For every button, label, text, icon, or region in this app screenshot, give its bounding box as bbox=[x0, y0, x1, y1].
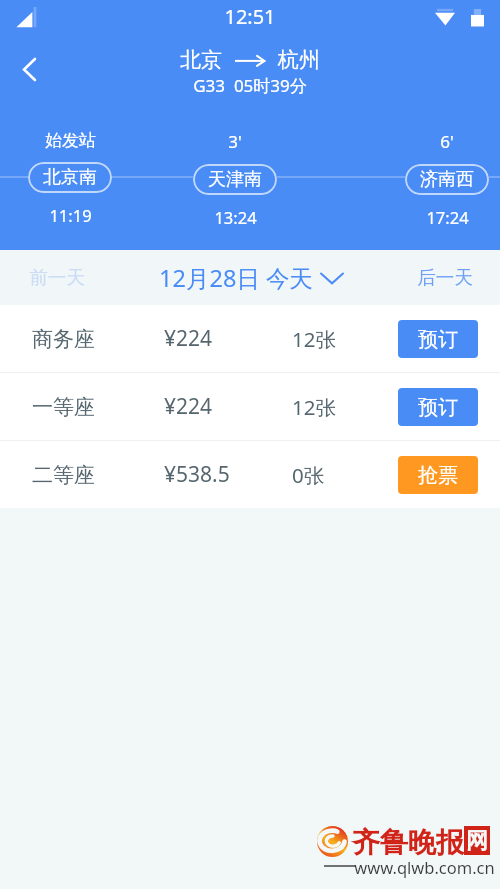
staticText: 前一天 bbox=[29, 266, 85, 289]
staticText: 17:24 bbox=[426, 206, 469, 228]
staticText: 网 bbox=[466, 827, 488, 855]
button[interactable]: Back bbox=[6, 46, 52, 92]
staticText: 始发站 bbox=[45, 130, 96, 151]
staticText: 商务座 bbox=[32, 326, 95, 352]
staticText: 12月28日 今天 bbox=[159, 262, 313, 294]
staticText: www.qlwb.com.cn bbox=[354, 856, 495, 878]
button[interactable]: 济南西 bbox=[405, 164, 489, 195]
button[interactable]: 北京南 bbox=[28, 162, 112, 193]
staticText: 12张 bbox=[292, 393, 336, 421]
staticText: 3' bbox=[228, 130, 242, 153]
button[interactable]: 前一天 bbox=[0, 250, 114, 305]
button[interactable]: 12月28日 今天 bbox=[159, 250, 343, 305]
staticText: 北京南 bbox=[43, 166, 97, 189]
staticText: 12:51 bbox=[0, 3, 500, 30]
staticText: 预订 bbox=[418, 327, 458, 352]
staticText: 一等座 bbox=[32, 394, 95, 420]
staticText: 济南西 bbox=[420, 168, 474, 191]
staticText: ¥538.5 bbox=[164, 460, 230, 489]
staticText: 12张 bbox=[292, 325, 336, 353]
button[interactable]: 预订 bbox=[398, 320, 478, 358]
staticText: ¥224 bbox=[164, 324, 213, 353]
staticText: 齐鲁晚报 bbox=[352, 825, 464, 860]
staticText: 6' bbox=[440, 130, 454, 153]
button[interactable]: 天津南 bbox=[193, 164, 277, 195]
staticText: G33 05时39分 bbox=[0, 74, 500, 97]
staticText: 后一天 bbox=[417, 266, 473, 289]
staticText: 二等座 bbox=[32, 462, 95, 488]
staticText: 13:24 bbox=[214, 206, 257, 228]
staticText: 杭州 bbox=[278, 47, 320, 73]
staticText: 北京 bbox=[180, 47, 222, 73]
button[interactable]: 商务座 bbox=[0, 305, 500, 372]
staticText: 抢票 bbox=[418, 463, 458, 488]
staticText: 天津南 bbox=[208, 168, 262, 191]
staticText: 预订 bbox=[418, 395, 458, 420]
staticText: 0张 bbox=[292, 461, 325, 489]
button[interactable]: 预订 bbox=[398, 388, 478, 426]
staticText: ¥224 bbox=[164, 392, 213, 421]
staticText: 11:19 bbox=[49, 204, 92, 226]
button[interactable]: 后一天 bbox=[388, 250, 500, 305]
button[interactable]: 一等座 bbox=[0, 373, 500, 440]
button[interactable]: 抢票 bbox=[398, 456, 478, 494]
button[interactable]: 二等座 bbox=[0, 441, 500, 508]
